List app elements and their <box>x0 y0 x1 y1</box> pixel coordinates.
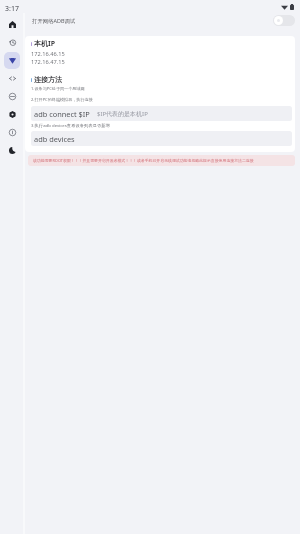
button[interactable]: history <box>4 34 20 51</box>
staticText: adb connect $IP <box>34 109 90 119</box>
button[interactable]: code <box>4 70 20 87</box>
button[interactable]: wifi <box>4 52 20 69</box>
staticText: 1.设备与PC处于同一个局域网 <box>31 86 85 92</box>
button[interactable]: adb devices <box>31 131 292 146</box>
staticText: 172.16.47.15 <box>31 58 65 66</box>
staticText: 该功能需要ROOT权限！！！并且需要开启开发者模式！！！或者手机已开启无线调试功… <box>33 158 254 163</box>
staticText: adb devices <box>34 134 75 144</box>
staticText: 172.16.46.15 <box>31 50 65 58</box>
staticText: 2.打开PC的终端模拟器，执行连接 <box>31 97 93 103</box>
staticText: 3.执行adb devices查看设备列表是否新增 <box>31 122 110 128</box>
staticText: 打开网络ADB调试 <box>32 17 76 24</box>
button[interactable]: info <box>4 124 20 141</box>
button[interactable]: gear <box>4 106 20 123</box>
staticText: 3:17 <box>5 4 19 13</box>
button[interactable]: adb connect $IP <box>31 106 292 121</box>
button[interactable]: Toggle network ADB <box>273 15 295 26</box>
staticText: 本机IP <box>34 39 56 49</box>
staticText: 连接方法 <box>34 75 62 84</box>
button[interactable]: moon <box>4 142 20 159</box>
staticText: $IP代表的是本机IP <box>97 110 148 118</box>
button[interactable]: block <box>4 88 20 105</box>
button[interactable]: home <box>4 16 20 33</box>
